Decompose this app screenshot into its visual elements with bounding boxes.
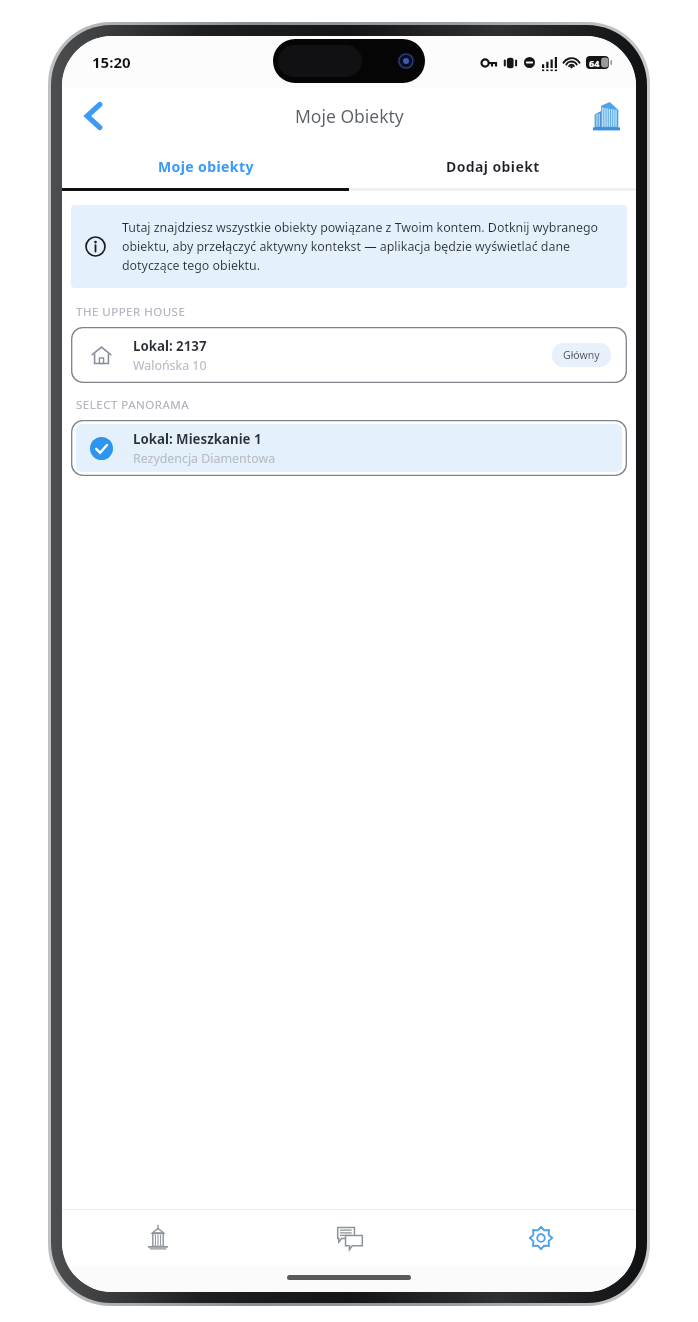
- staticText: Moje Obiekty: [295, 104, 404, 128]
- staticText: Rezydencja Diamentowa: [133, 450, 276, 467]
- button[interactable]: Buildings: [62, 1210, 254, 1266]
- staticText: 64: [589, 57, 600, 69]
- button[interactable]: Settings: [445, 1210, 636, 1266]
- staticText: Tutaj znajdziesz wszystkie obiekty powią…: [122, 219, 613, 274]
- staticText: Moje obiekty: [158, 157, 254, 176]
- button[interactable]: Dodaj obiekt: [349, 144, 636, 188]
- button[interactable]: Messages: [254, 1210, 445, 1266]
- staticText: Lokal: 2137: [133, 337, 207, 355]
- staticText: Lokal: Mieszkanie 1: [133, 430, 262, 448]
- staticText: Dodaj obiekt: [446, 157, 540, 176]
- staticText: THE UPPER HOUSE: [76, 304, 186, 320]
- button[interactable]: Building: [586, 96, 626, 136]
- button[interactable]: Back: [70, 93, 116, 139]
- staticText: Walońska 10: [133, 357, 207, 374]
- button[interactable]: Lokal: Mieszkanie 1: [71, 420, 627, 476]
- button[interactable]: Moje obiekty: [62, 144, 349, 188]
- staticText: Główny: [563, 348, 600, 362]
- staticText: SELECT PANORAMA: [76, 397, 190, 413]
- button[interactable]: Lokal: 2137: [71, 327, 627, 383]
- staticText: 15:20: [92, 52, 131, 72]
